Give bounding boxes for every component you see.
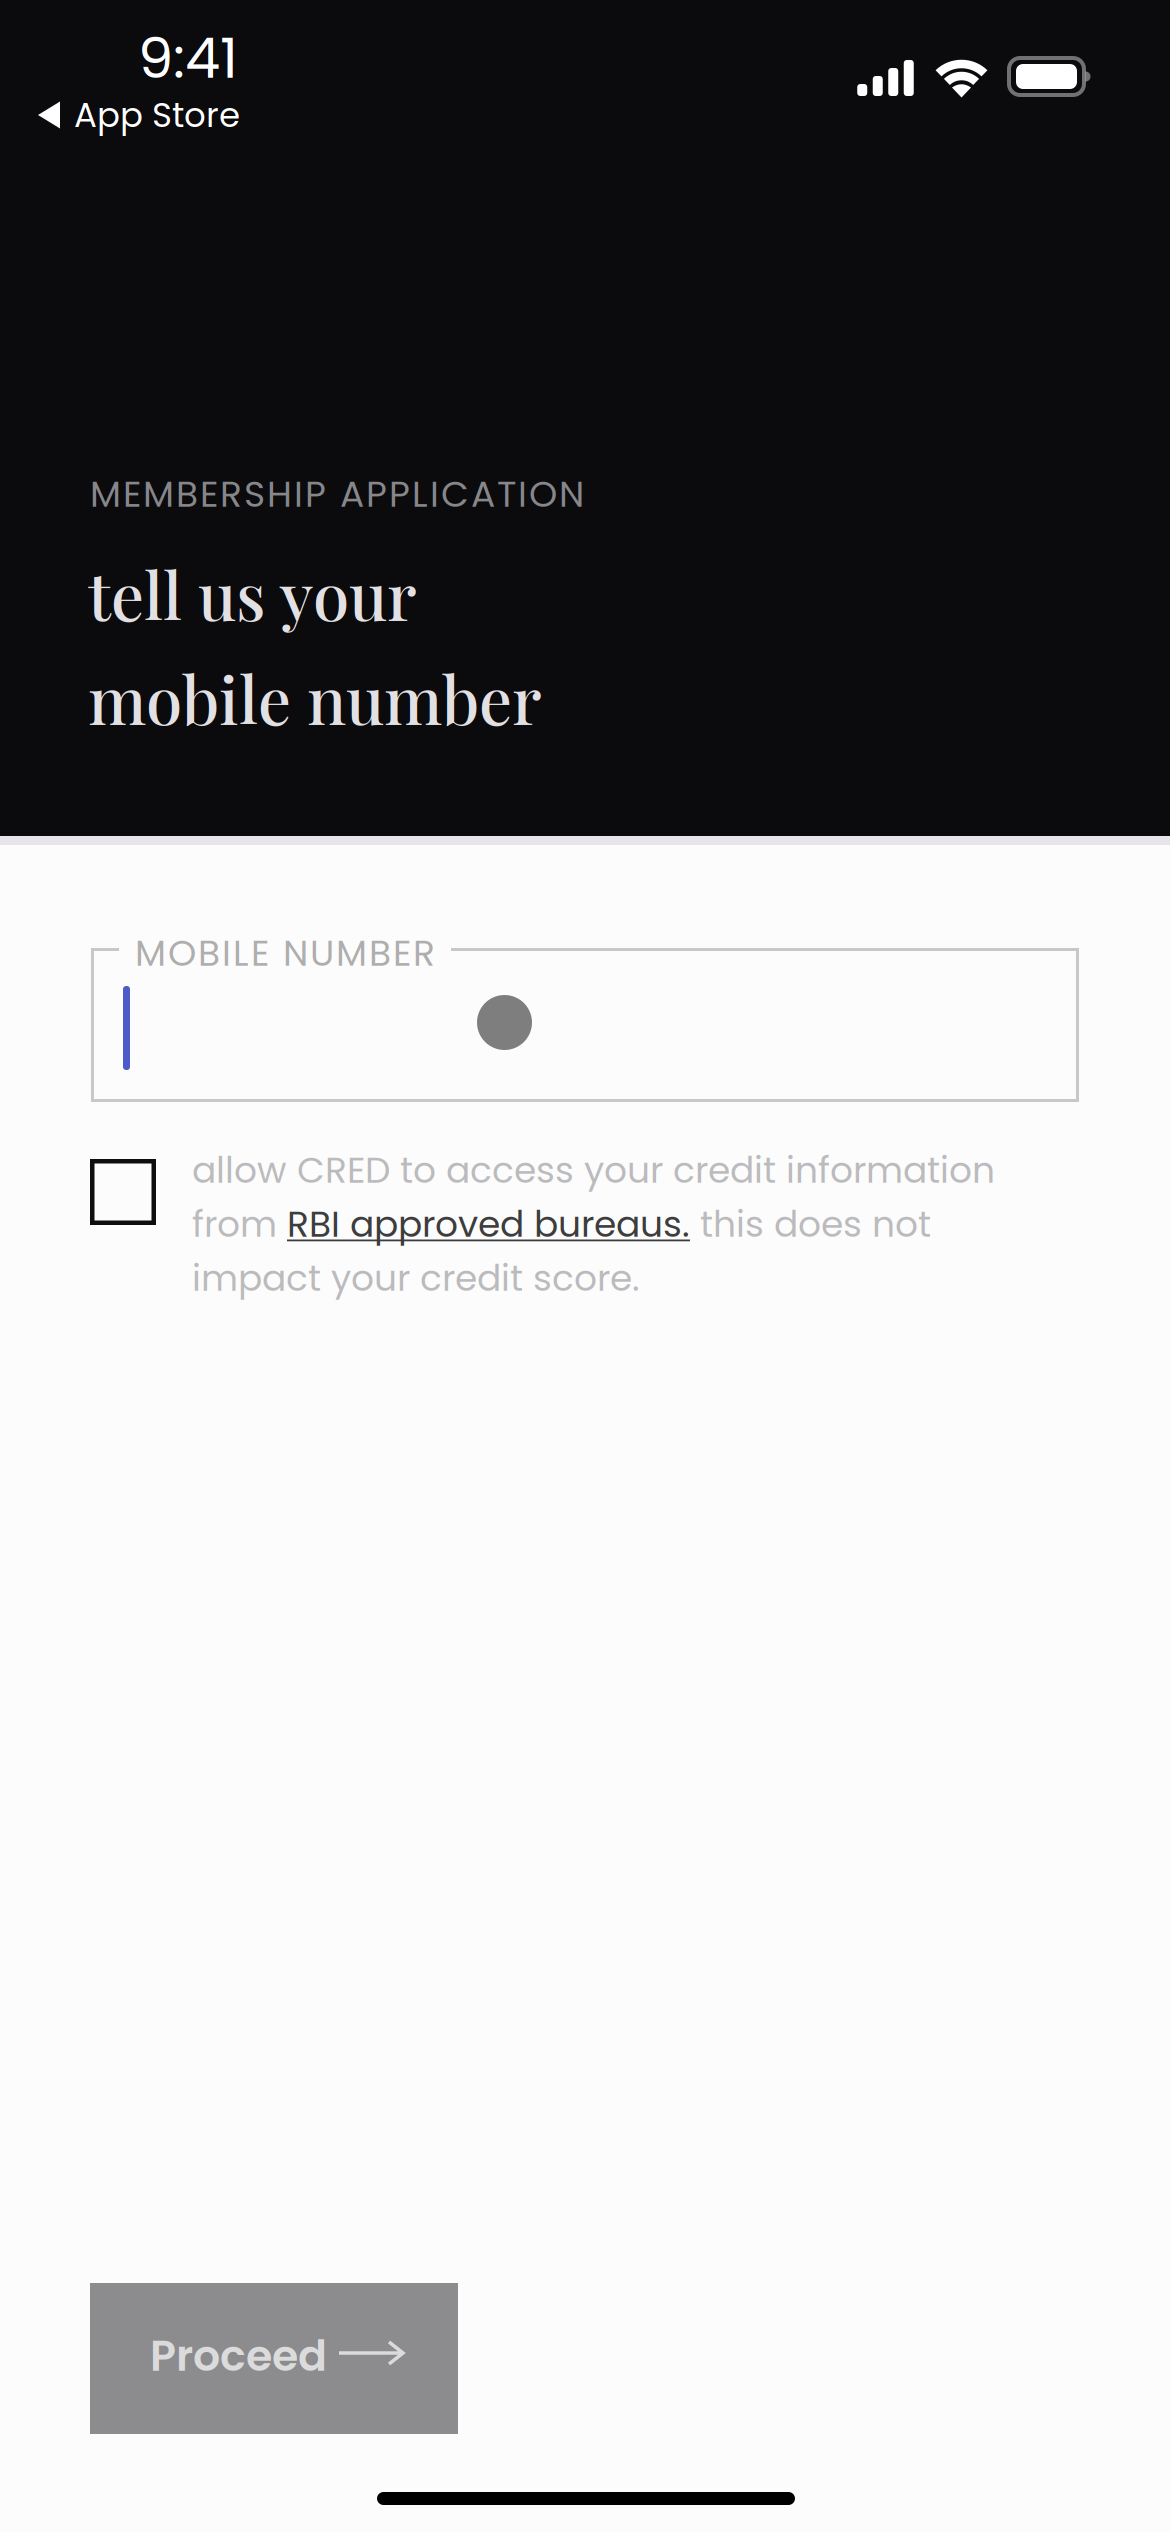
- staticText: App Store: [74, 91, 240, 139]
- staticText: allow CRED to access your credit informa…: [192, 1145, 995, 1195]
- staticText: mobile number: [88, 654, 542, 741]
- button[interactable]: Allow CRED to access credit information: [90, 1159, 156, 1225]
- staticText: from: [192, 1199, 287, 1249]
- staticText: tell us your: [88, 550, 417, 637]
- button[interactable]: Proceed: [90, 2283, 458, 2434]
- staticText: M E M B E R S H I P A P P L I C A T I O …: [90, 469, 584, 519]
- staticText: RBI approved bureaus.: [287, 1199, 690, 1249]
- staticText: Proceed: [150, 2326, 327, 2386]
- button[interactable]: Back to App Store: [0, 86, 330, 144]
- staticText: impact your credit score.: [192, 1253, 640, 1303]
- staticText: this does not: [690, 1199, 931, 1249]
- staticText: M O B I L E N U M B E R: [135, 928, 435, 978]
- button[interactable]: RBI approved bureaus.: [287, 1199, 690, 1249]
- staticText: 9:41: [138, 19, 238, 97]
